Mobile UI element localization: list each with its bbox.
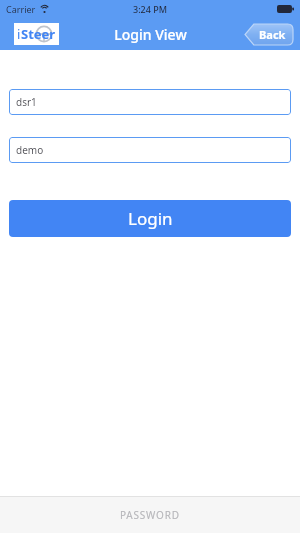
button[interactable]: demo	[9, 137, 291, 163]
staticText: Back	[259, 27, 286, 42]
staticText: demo	[16, 143, 44, 157]
staticText: Carrier	[6, 3, 36, 15]
staticText: 3:24 PM	[133, 3, 167, 15]
button[interactable]: iSteer logo	[14, 23, 59, 45]
button[interactable]: Back	[245, 24, 293, 45]
button[interactable]: Login	[9, 200, 291, 237]
staticText: Steer	[21, 25, 56, 43]
staticText: i	[17, 25, 21, 43]
button[interactable]: dsr1	[9, 89, 291, 115]
staticText: PASSWORD	[120, 508, 180, 522]
staticText: Login View	[114, 25, 187, 44]
staticText: Login	[128, 207, 173, 230]
staticText: dsr1	[16, 95, 37, 109]
